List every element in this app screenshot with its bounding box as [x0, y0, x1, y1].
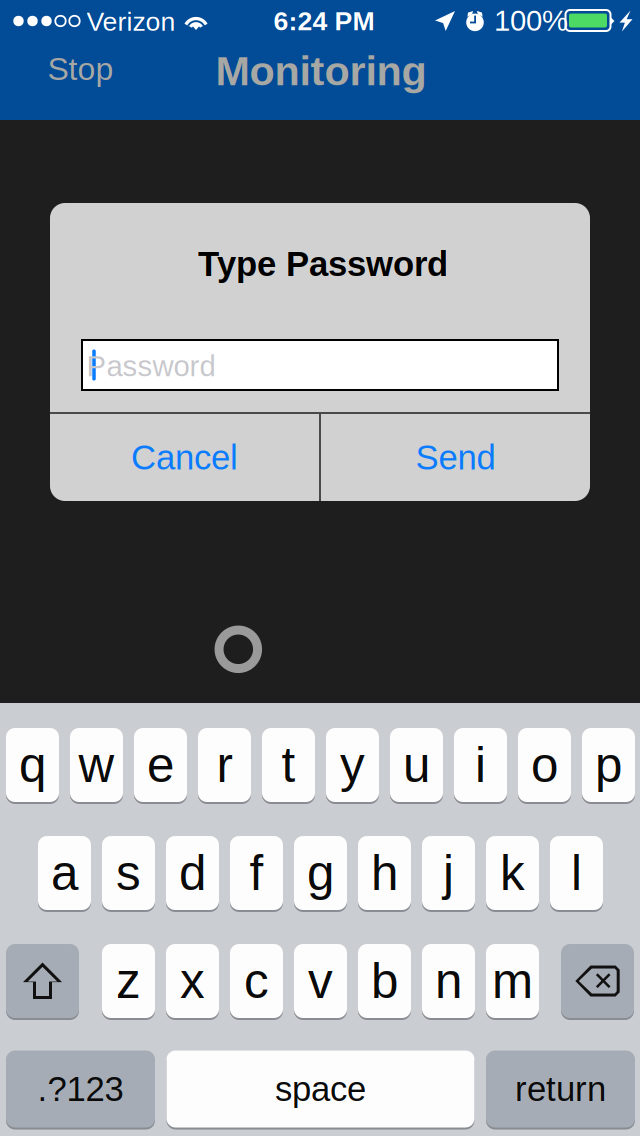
button[interactable]: l — [550, 835, 603, 911]
staticText: Monitoring — [215, 48, 426, 94]
staticText: return — [515, 1070, 606, 1108]
staticText: g — [307, 845, 334, 900]
staticText: .?123 — [37, 1070, 123, 1108]
staticText: d — [179, 845, 206, 900]
button[interactable]: v — [294, 943, 347, 1019]
button[interactable]: return — [486, 1049, 635, 1128]
staticText: p — [595, 737, 622, 792]
staticText: Type Password — [198, 245, 448, 283]
button[interactable]: .?123 — [6, 1049, 155, 1128]
button[interactable]: d — [166, 835, 219, 911]
staticText: Verizon — [86, 7, 175, 36]
staticText: n — [435, 953, 462, 1008]
staticText: z — [116, 953, 141, 1008]
button[interactable]: o — [518, 727, 571, 803]
button[interactable]: m — [486, 943, 539, 1019]
button[interactable]: t — [262, 727, 315, 803]
staticText: 6:24 PM — [273, 6, 374, 36]
staticText: h — [371, 845, 398, 900]
staticText: Stop — [47, 51, 113, 87]
staticText: w — [78, 737, 114, 792]
button[interactable]: Send — [321, 414, 590, 501]
button[interactable]: Shift — [6, 943, 79, 1019]
button[interactable]: e — [134, 727, 187, 803]
button[interactable]: Cancel — [50, 414, 319, 501]
staticText: x — [180, 953, 205, 1008]
button[interactable]: r — [198, 727, 251, 803]
button[interactable]: p — [582, 727, 635, 803]
staticText: Cancel — [131, 438, 238, 477]
button[interactable]: x — [166, 943, 219, 1019]
button[interactable]: q — [6, 727, 59, 803]
staticText: i — [475, 737, 486, 792]
staticText: e — [147, 737, 174, 792]
staticText: l — [571, 845, 582, 900]
staticText: v — [308, 953, 333, 1008]
button[interactable]: u — [390, 727, 443, 803]
staticText: t — [281, 737, 295, 792]
staticText: u — [403, 737, 430, 792]
staticText: r — [216, 737, 232, 792]
staticText: o — [531, 737, 558, 792]
staticText: c — [244, 953, 269, 1008]
button[interactable]: f — [230, 835, 283, 911]
button[interactable]: h — [358, 835, 411, 911]
button[interactable]: j — [422, 835, 475, 911]
staticText: 100% — [494, 4, 568, 37]
button[interactable]: k — [486, 835, 539, 911]
button[interactable]: i — [454, 727, 507, 803]
button[interactable]: y — [326, 727, 379, 803]
button[interactable]: g — [294, 835, 347, 911]
button[interactable]: Delete — [561, 943, 634, 1019]
staticText: q — [19, 737, 46, 792]
staticText: m — [492, 953, 533, 1008]
button[interactable]: a — [38, 835, 91, 911]
staticText: k — [500, 845, 525, 900]
button[interactable]: w — [70, 727, 123, 803]
staticText: s — [116, 845, 141, 900]
button[interactable]: space — [166, 1049, 474, 1128]
staticText: Send — [415, 438, 495, 477]
staticText: Password — [86, 350, 215, 382]
button[interactable]: Stop — [25, 37, 135, 101]
staticText: a — [51, 845, 78, 900]
staticText: space — [275, 1070, 366, 1108]
button[interactable]: b — [358, 943, 411, 1019]
staticText: y — [340, 737, 365, 792]
button[interactable]: s — [102, 835, 155, 911]
staticText: b — [371, 953, 398, 1008]
staticText: f — [249, 845, 263, 900]
button[interactable]: c — [230, 943, 283, 1019]
button[interactable]: n — [422, 943, 475, 1019]
staticText: j — [443, 845, 454, 900]
button[interactable]: z — [102, 943, 155, 1019]
